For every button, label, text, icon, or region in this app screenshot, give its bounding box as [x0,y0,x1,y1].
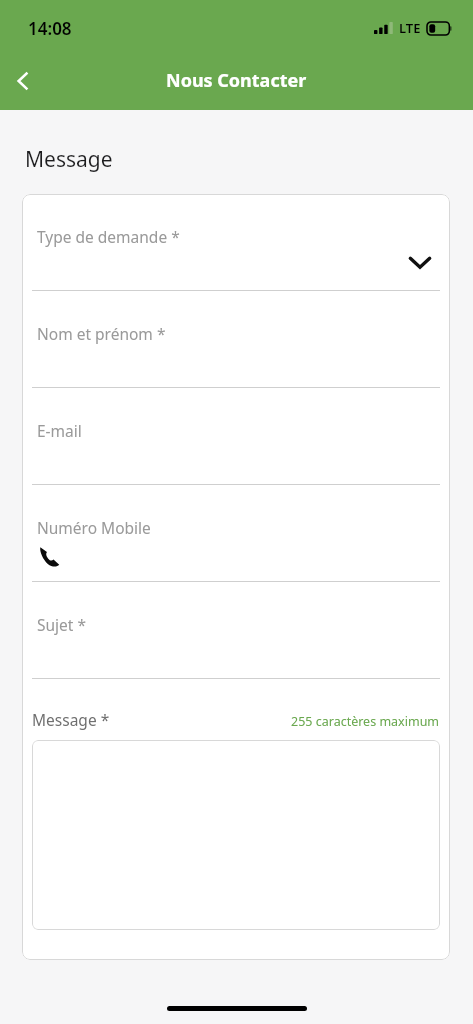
button[interactable] [32,740,440,930]
button[interactable]: Numéro Mobile [22,485,450,582]
staticText: Message [25,145,113,174]
staticText: E-mail [37,420,82,441]
staticText: Sujet * [37,614,86,635]
staticText: Message * [32,709,110,730]
button[interactable]: E-mail [22,388,450,485]
button[interactable]: Nom et prénom * [22,291,450,388]
staticText: Numéro Mobile [37,517,151,538]
staticText: Type de demande * [37,226,180,247]
staticText: 255 caractères maximum [291,713,440,730]
staticText: Nous Contacter [166,68,307,93]
staticText: LTE [399,19,421,37]
staticText: 14:08 [28,17,72,40]
staticText: Nom et prénom * [37,323,166,344]
button[interactable]: Sujet * [22,582,450,679]
button[interactable]: Type de demande * [22,194,450,291]
button[interactable]: Back [2,60,44,102]
